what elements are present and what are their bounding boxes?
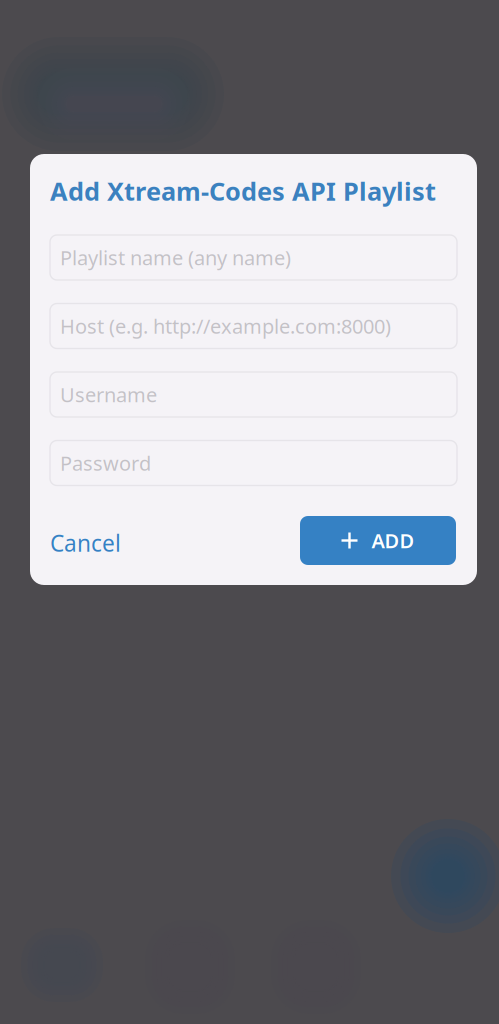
staticText: Password [60,450,151,476]
staticText: Add Xtream-Codes API Playlist [50,174,436,208]
staticText: Host (e.g. http://example.com:8000) [60,313,391,339]
staticText: ADD [371,527,414,554]
button[interactable]: ADD [300,516,456,565]
staticText: Playlist name (any name) [60,244,291,271]
button[interactable]: Cancel [46,518,125,568]
staticText: Cancel [50,528,121,558]
staticText: Username [60,381,157,408]
